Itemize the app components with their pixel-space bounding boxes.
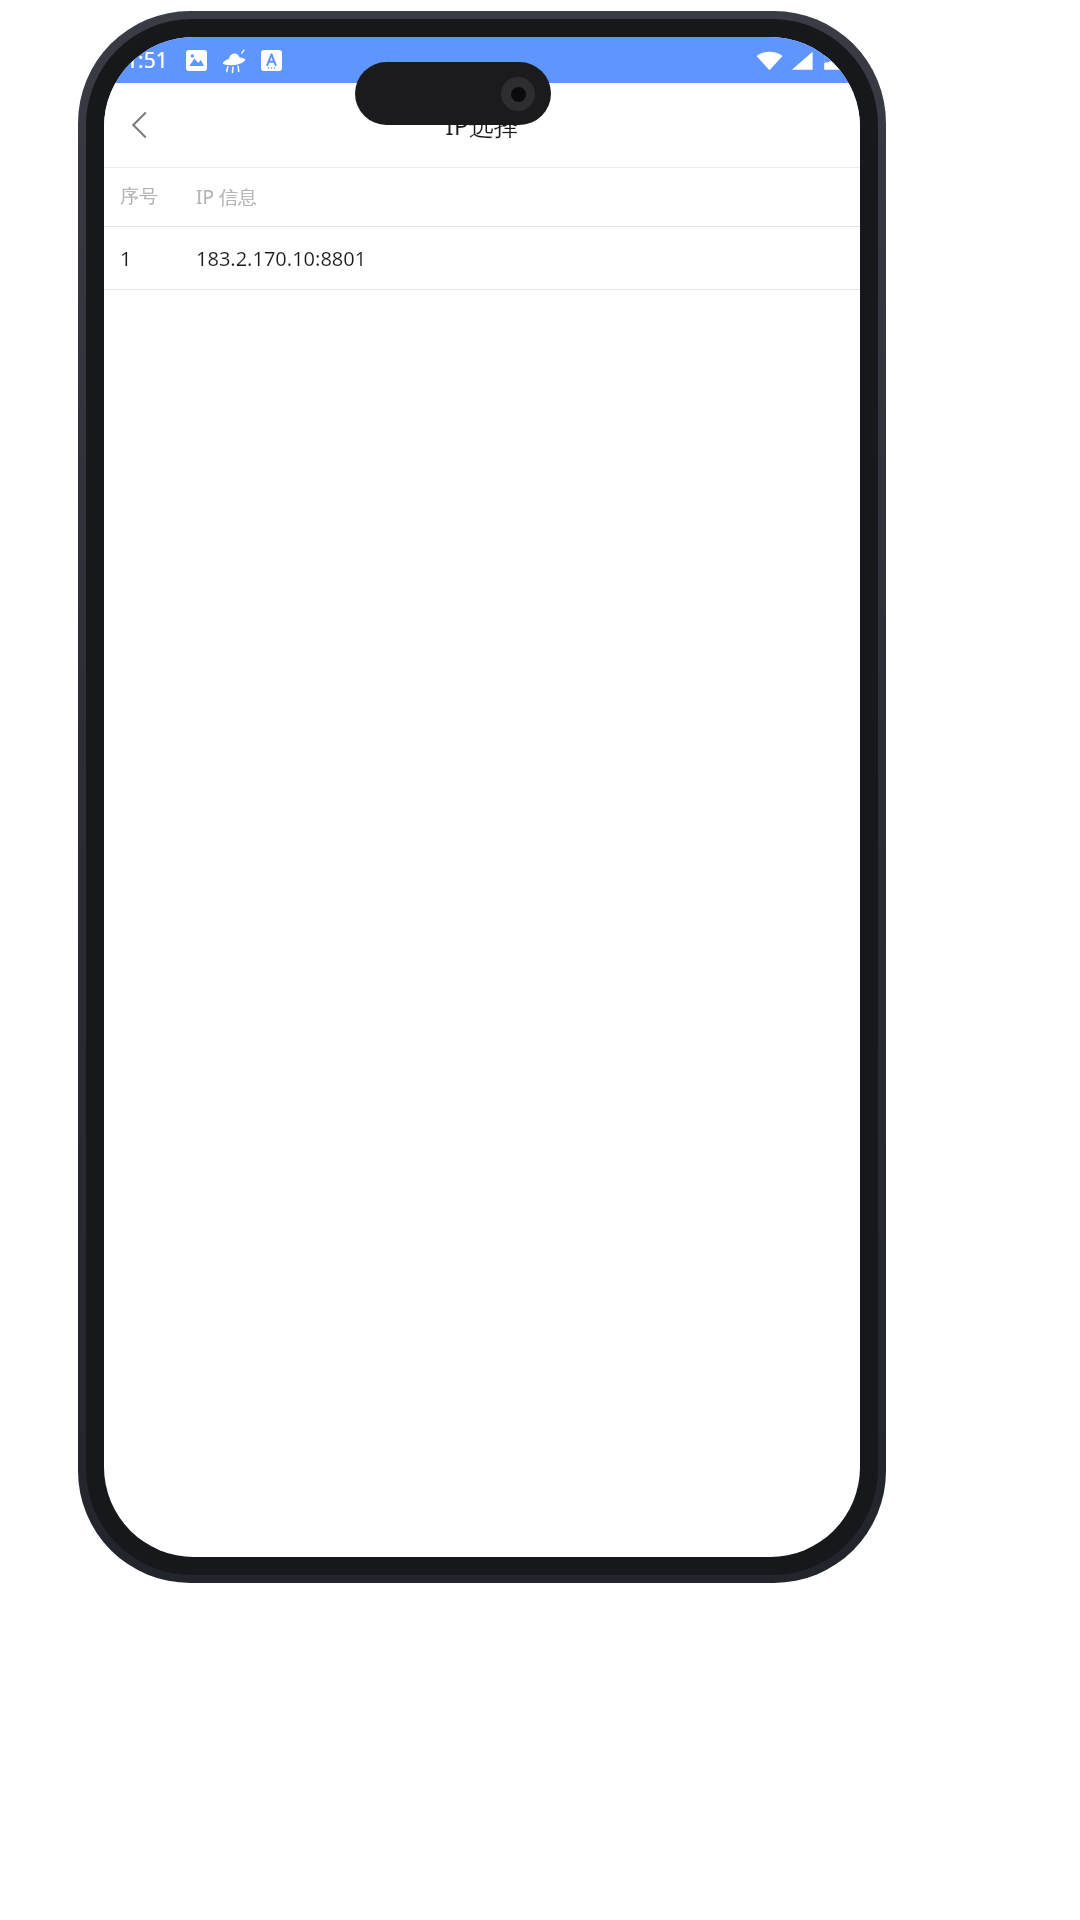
button[interactable]: Back <box>112 97 168 153</box>
staticText: 183.2.170.10:8801 <box>196 245 367 272</box>
staticText: 1:51 <box>126 46 168 75</box>
staticText: 序号 <box>120 185 182 209</box>
staticText: 1 <box>120 245 182 272</box>
staticText: IP 信息 <box>196 184 257 210</box>
staticText: IP选择 <box>445 108 519 142</box>
button[interactable]: 1 <box>104 227 860 289</box>
